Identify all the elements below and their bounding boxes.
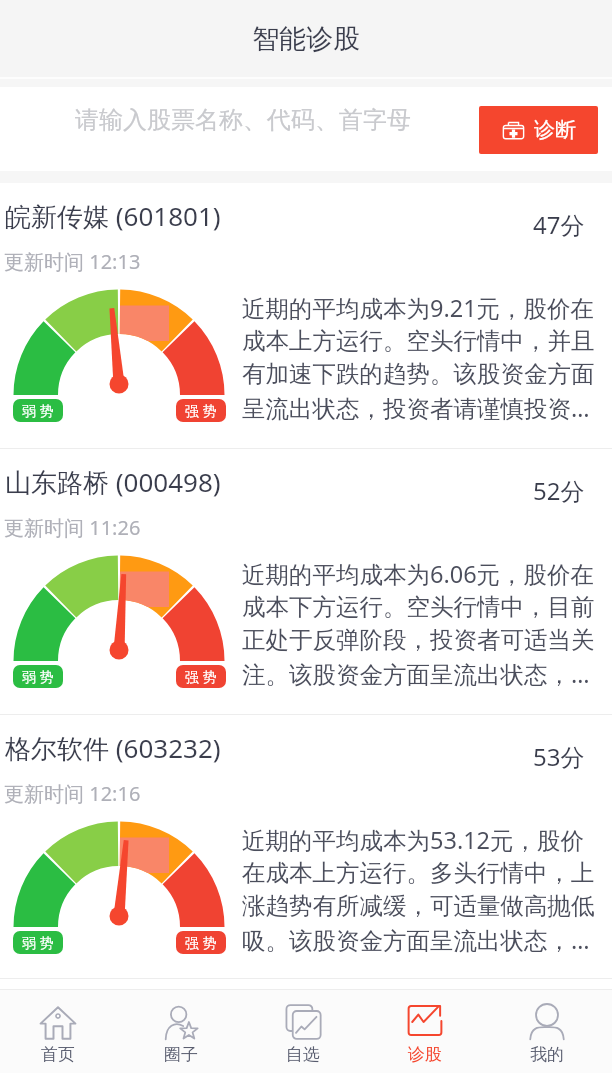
staticText: 圈子 [164,1044,198,1065]
staticText: 近期的平均成本为6.06元，股价在成本下方运行。空头行情中，目前正处于反弹阶段，… [242,558,602,689]
staticText: 山东路桥 (000498) [5,464,221,500]
button[interactable]: 皖新传媒 (601801) [0,183,612,448]
staticText: 诊断 [534,117,576,143]
staticText: 诊股 [408,1044,442,1065]
staticText: 52分 [533,474,585,507]
button[interactable]: 诊断 [479,106,598,154]
button[interactable]: 格尔软件 (603232) [0,715,612,978]
staticText: 近期的平均成本为53.12元，股价在成本上方运行。多头行情中，上涨趋势有所减缓，… [242,824,602,955]
button[interactable]: 诊股 [364,990,486,1073]
staticText: 我的 [530,1044,564,1065]
staticText: 47分 [533,208,585,241]
staticText: 请输入股票名称、代码、首字母 [75,105,411,135]
staticText: 更新时间 11:26 [4,514,141,541]
staticText: 首页 [41,1044,75,1065]
staticText: 近期的平均成本为9.21元，股价在成本上方运行。空头行情中，并且有加速下跌的趋势… [242,292,602,423]
staticText: 皖新传媒 (601801) [5,198,221,234]
staticText: 格尔软件 (603232) [5,730,221,766]
staticText: 更新时间 12:13 [4,248,141,275]
staticText: 更新时间 12:16 [4,780,141,807]
staticText: 强 势 [185,401,217,420]
staticText: 53分 [533,740,585,773]
staticText: 弱 势 [22,401,54,420]
staticText: 强 势 [185,933,217,952]
button[interactable]: 山东路桥 (000498) [0,449,612,714]
button[interactable]: 首页 [0,990,119,1073]
button[interactable]: 自选 [242,990,364,1073]
staticText: 智能诊股 [252,22,360,56]
button[interactable]: 圈子 [119,990,242,1073]
staticText: 强 势 [185,667,217,686]
button[interactable]: 我的 [486,990,608,1073]
staticText: 弱 势 [22,667,54,686]
staticText: 弱 势 [22,933,54,952]
staticText: 自选 [286,1044,320,1065]
